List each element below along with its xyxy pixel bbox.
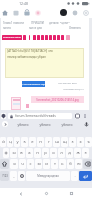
button[interactable] <box>61 35 64 40</box>
button[interactable]: ч <box>19 159 26 169</box>
button[interactable] <box>37 35 40 40</box>
button[interactable]: Security <box>1 113 6 119</box>
staticText: ми се для <box>29 26 42 30</box>
button[interactable] <box>29 35 30 40</box>
button[interactable]: э <box>82 148 89 158</box>
button[interactable]: н <box>37 137 44 147</box>
button[interactable]: у <box>14 137 20 147</box>
button[interactable]: Shift <box>0 159 9 169</box>
staticText: ПОЛОЖЕ ОПЦИИ <box>63 87 84 90</box>
button[interactable]: Back <box>15 188 26 199</box>
button[interactable]: Favourite <box>34 9 42 17</box>
staticText: убеого <box>17 122 29 127</box>
button[interactable]: в <box>18 148 25 158</box>
button[interactable]: к <box>21 137 28 147</box>
button[interactable]: ф <box>3 148 9 158</box>
button[interactable]: Messages <box>71 9 79 17</box>
button[interactable]: Tab count <box>75 113 80 119</box>
button[interactable]: щ <box>61 137 68 147</box>
button[interactable]: Voice input <box>83 121 90 128</box>
button[interactable] <box>49 35 52 40</box>
button[interactable]: Home <box>41 188 52 199</box>
staticText: ф <box>4 150 8 156</box>
button[interactable]: СМОТРЕТЬ ТЕМУ <box>2 35 22 40</box>
staticText: м <box>37 161 41 167</box>
button[interactable]: п <box>34 148 41 158</box>
staticText: б <box>69 161 72 167</box>
button[interactable]: More options <box>83 113 87 119</box>
button[interactable]: г <box>45 137 52 147</box>
button[interactable]: Emoji <box>18 171 25 181</box>
button[interactable]: Account <box>60 9 67 16</box>
button[interactable]: т <box>51 159 58 169</box>
button[interactable]: ?123 <box>0 171 9 181</box>
button[interactable] <box>53 35 56 40</box>
staticText: ю <box>77 161 81 167</box>
button[interactable]: ш <box>53 137 60 147</box>
staticText: ж <box>76 150 80 156</box>
staticText: я <box>13 161 16 167</box>
staticText: е <box>31 139 34 145</box>
button[interactable] <box>66 35 70 40</box>
button[interactable]: Recents <box>66 188 77 199</box>
staticText: щ <box>63 139 67 145</box>
button[interactable] <box>33 35 36 40</box>
staticText: немир забавно виды убрал <box>7 55 46 59</box>
button[interactable]: Enter <box>79 171 92 181</box>
staticText: ПРИВЫ ВЫ БЫЛ <box>58 81 77 84</box>
button[interactable]: з <box>69 137 76 147</box>
button[interactable]: . <box>71 171 78 181</box>
staticText: место <box>3 26 11 30</box>
staticText: Международная <box>37 174 59 178</box>
button[interactable]: л <box>58 148 65 158</box>
button[interactable]: о <box>50 148 57 158</box>
staticText: ПРИШЛИ <box>31 21 44 25</box>
button[interactable]: Международная <box>26 171 70 181</box>
staticText: д <box>68 150 71 156</box>
button[interactable]: х <box>77 137 84 147</box>
staticText: СМОТРЕТЬ ТЕМУ <box>3 36 21 39</box>
button[interactable]: с <box>27 159 34 169</box>
staticText: ы <box>12 150 16 156</box>
button[interactable]: д <box>66 148 73 158</box>
button[interactable]: ц <box>7 137 13 147</box>
button[interactable]: й <box>0 137 6 147</box>
button[interactable]: я <box>10 159 18 169</box>
staticText: ъ <box>87 139 90 145</box>
button[interactable]: Tabs <box>12 9 20 17</box>
staticText: ь <box>61 161 64 167</box>
button[interactable] <box>57 35 60 40</box>
staticText: и <box>45 161 48 167</box>
button[interactable]: р <box>42 148 49 158</box>
button[interactable]: , <box>10 171 17 181</box>
button[interactable]: ИСПОЛЬЗОВАТЬ ЩЕ ОП <box>22 81 45 87</box>
staticText: э <box>84 150 87 156</box>
button[interactable]: ь <box>59 159 66 169</box>
button[interactable]: Backspace <box>83 159 92 169</box>
button[interactable]: б <box>67 159 74 169</box>
button[interactable]: и <box>43 159 50 169</box>
staticText: о <box>52 150 55 156</box>
button[interactable]: Expand toolbar <box>2 121 8 127</box>
button[interactable] <box>41 35 44 40</box>
staticText: р <box>44 150 47 156</box>
staticText: а <box>28 150 31 156</box>
button[interactable]: ы <box>10 148 17 158</box>
button[interactable]: forum.Semena.rds/threads <box>8 113 72 119</box>
button[interactable]: е <box>29 137 36 147</box>
button[interactable]: а <box>26 148 33 158</box>
staticText: , <box>13 173 15 179</box>
button[interactable]: м <box>35 159 42 169</box>
staticText: убеого <box>39 122 51 127</box>
staticText: . <box>74 173 76 179</box>
button[interactable] <box>23 35 26 40</box>
staticText: п <box>36 150 39 156</box>
button[interactable]: ж <box>74 148 81 158</box>
button[interactable]: ю <box>75 159 82 169</box>
button[interactable]: ъ <box>85 137 92 147</box>
button[interactable] <box>45 35 48 40</box>
button[interactable]: Home <box>1 9 9 17</box>
staticText: у <box>16 139 19 145</box>
button[interactable]: Cart <box>23 9 31 17</box>
button[interactable]: Settings <box>82 9 90 17</box>
